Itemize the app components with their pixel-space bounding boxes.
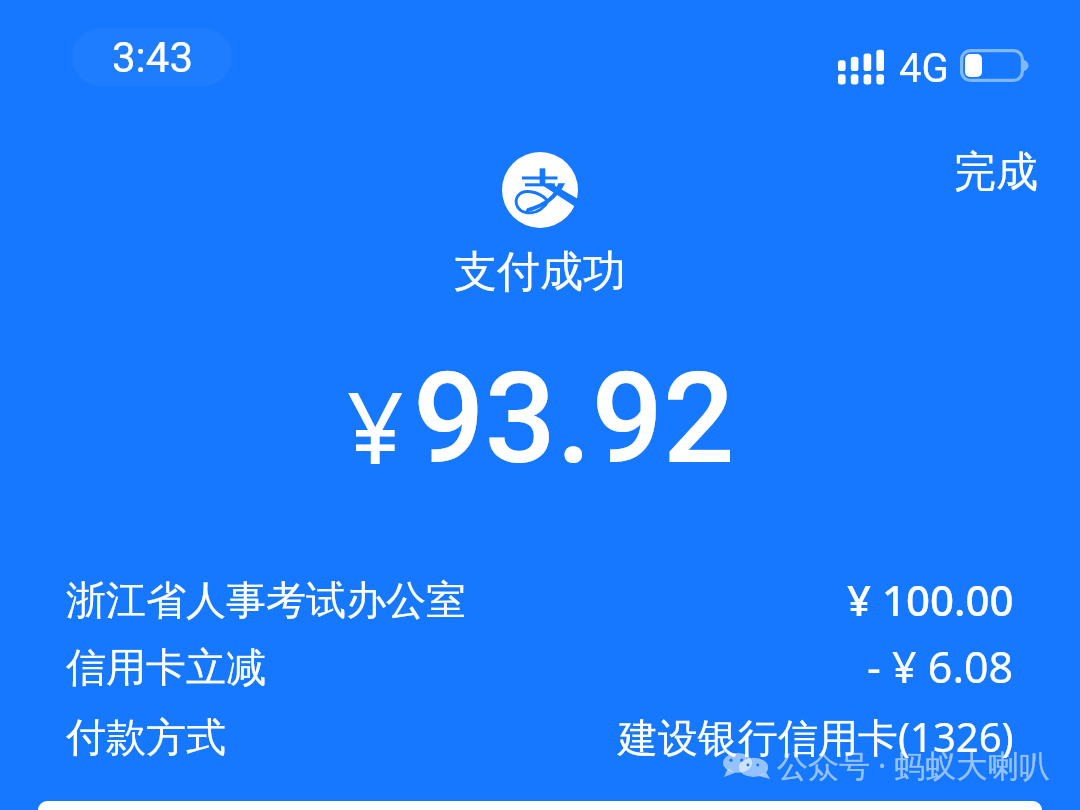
staticText: 支付成功 [454,245,626,299]
staticText: 4G [899,45,949,92]
staticText: - ¥ 6.08 [867,637,1014,696]
staticText: 付款方式 [66,712,226,762]
staticText: ¥ 100.00 [847,571,1014,628]
other: Battery [960,49,1030,84]
button[interactable]: 浙江省人事考试办公室 [66,571,1014,628]
button[interactable]: 付款方式 [66,709,1014,764]
other: Cellular signal [838,50,886,85]
button[interactable]: 信用卡立减 [66,637,1014,696]
staticText: 浙江省人事考试办公室 [66,575,466,625]
staticText: 建设银行信用卡(1326) [618,709,1014,764]
staticText: 公众号 · 蚂蚁大喇叭 [777,744,1050,786]
staticText: 93.92 [413,345,735,493]
staticText: 完成 [954,146,1038,199]
other: WeChat [723,753,770,777]
staticText: ¥ [347,358,404,493]
button[interactable]: 完成 [944,136,1048,209]
staticText: 信用卡立减 [66,642,266,692]
staticText: 3:43 [112,33,193,82]
